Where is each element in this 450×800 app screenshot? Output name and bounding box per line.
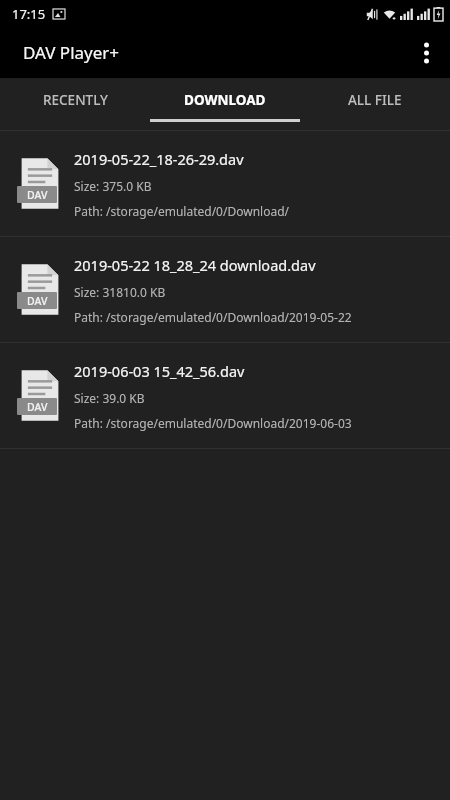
staticText: 17:15 [12, 5, 46, 23]
staticText: DAV Player+ [23, 41, 120, 64]
staticText: 2019-05-22_18-26-29.dav [74, 149, 244, 169]
staticText: Size: 375.0 KB [74, 178, 152, 194]
staticText: 2019-06-03 15_42_56.dav [74, 361, 245, 381]
staticText: DAV [27, 188, 48, 202]
staticText: Path: /storage/emulated/0/Download/ [74, 203, 290, 219]
button[interactable]: DAV [0, 343, 450, 448]
button[interactable]: DAV [0, 237, 450, 342]
button[interactable]: DOWNLOAD [150, 78, 300, 130]
button[interactable]: More options [402, 29, 450, 77]
button[interactable]: ALL FILE [300, 78, 450, 130]
staticText: Size: 31810.0 KB [74, 284, 166, 300]
button[interactable]: RECENTLY [0, 78, 150, 130]
staticText: Path: /storage/emulated/0/Download/2019-… [74, 309, 352, 325]
staticText: RECENTLY [43, 91, 108, 109]
staticText: 2019-05-22 18_28_24 download.dav [74, 255, 316, 275]
button[interactable]: DAV [0, 131, 450, 236]
staticText: Path: /storage/emulated/0/Download/2019-… [74, 415, 352, 431]
staticText: Size: 39.0 KB [74, 390, 145, 406]
staticText: DOWNLOAD [184, 91, 266, 109]
staticText: ALL FILE [348, 91, 402, 109]
staticText: DAV [27, 400, 48, 414]
staticText: DAV [27, 294, 48, 308]
